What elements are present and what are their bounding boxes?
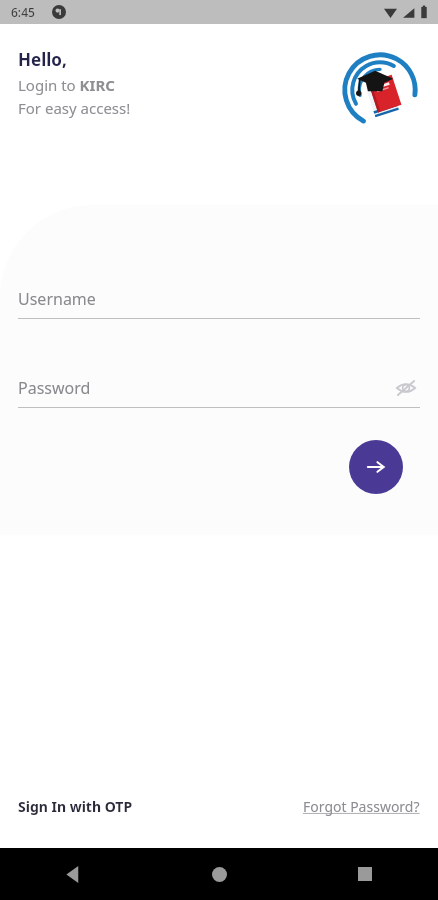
button[interactable]: Sign in bbox=[349, 440, 403, 494]
button[interactable]: Username bbox=[18, 282, 420, 316]
button[interactable]: Sign In with OTP bbox=[18, 793, 133, 820]
staticText: Username bbox=[18, 288, 96, 310]
staticText: Login to KIRC bbox=[18, 75, 115, 95]
button[interactable]: Back bbox=[0, 848, 146, 900]
button[interactable]: Forgot Password? bbox=[303, 793, 420, 820]
staticText: For easy access! bbox=[18, 98, 131, 118]
button[interactable]: Recent apps bbox=[292, 848, 438, 900]
button[interactable]: Show password bbox=[392, 374, 420, 402]
staticText: 6:45 bbox=[11, 4, 35, 20]
button[interactable]: Home bbox=[146, 848, 292, 900]
staticText: Hello, bbox=[18, 48, 67, 71]
button[interactable]: Password bbox=[18, 371, 420, 405]
staticText: Sign In with OTP bbox=[18, 797, 133, 816]
staticText: Password bbox=[18, 377, 392, 399]
staticText: Forgot Password? bbox=[303, 797, 420, 816]
